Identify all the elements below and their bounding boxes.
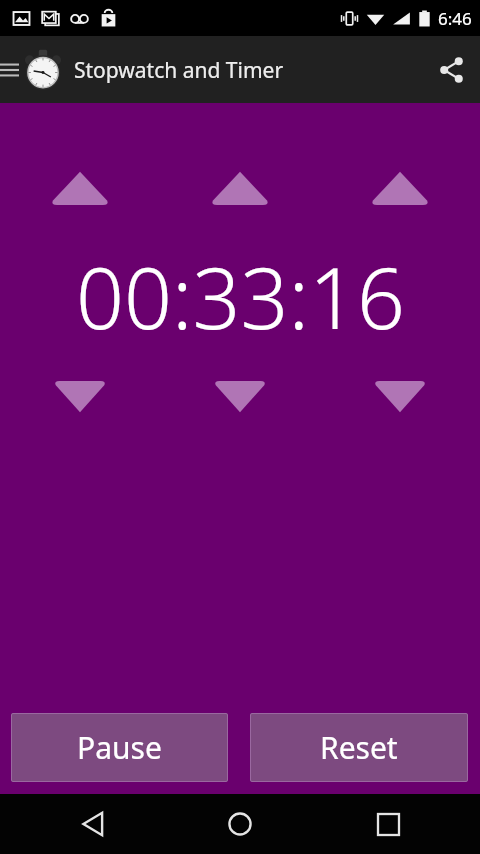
staticText: Reset (320, 727, 398, 768)
button[interactable]: Decrease minutes (160, 375, 320, 419)
staticText: Stopwatch and Timer (74, 56, 284, 85)
staticText: 00:33:16 (76, 239, 405, 353)
button[interactable]: Increase hours (0, 166, 160, 210)
button[interactable]: Recent apps (333, 794, 443, 854)
button[interactable]: Decrease hours (0, 375, 160, 419)
button[interactable]: Menu (0, 46, 20, 94)
button[interactable]: Decrease seconds (320, 375, 480, 419)
button[interactable]: Increase minutes (160, 166, 320, 210)
staticText: Pause (77, 727, 162, 768)
button[interactable]: Pause (11, 713, 228, 782)
button[interactable]: Reset (250, 713, 468, 782)
button[interactable]: Back (38, 794, 148, 854)
button[interactable]: Increase seconds (320, 166, 480, 210)
staticText: 6:46 (438, 7, 472, 30)
button[interactable]: Home (185, 794, 295, 854)
button[interactable]: Share (424, 42, 480, 98)
